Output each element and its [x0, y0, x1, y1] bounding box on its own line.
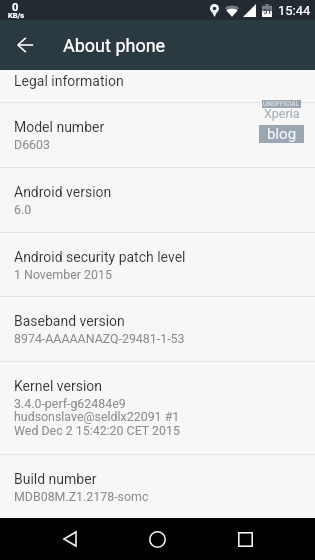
- staticText: Android security patch level: [14, 249, 186, 265]
- staticText: Model number: [14, 119, 105, 135]
- staticText: UNOFFICIAL: [263, 100, 300, 108]
- staticText: Build number: [14, 471, 97, 487]
- staticText: blog: [267, 125, 297, 143]
- staticText: 0: [12, 1, 19, 14]
- staticText: 8974-AAAAANAZQ-29481-1-53: [14, 331, 185, 346]
- staticText: About phone: [63, 35, 166, 56]
- button[interactable]: Back: [0, 20, 49, 70]
- staticText: 6.0: [14, 202, 32, 217]
- button[interactable]: Recent apps: [219, 518, 271, 560]
- staticText: 15:44: [278, 3, 311, 18]
- staticText: 51: [263, 7, 272, 16]
- button[interactable]: Android version: [0, 168, 315, 232]
- staticText: MDB08M.Z1.2178-somc: [14, 489, 149, 504]
- staticText: KB/s: [8, 11, 25, 20]
- staticText: 3.4.0-perf-g62484e9 hudsonslave@seldlx22…: [14, 396, 180, 438]
- button[interactable]: Model number: [0, 103, 315, 167]
- staticText: D6603: [14, 137, 50, 152]
- button[interactable]: Build number: [0, 455, 315, 518]
- staticText: 1 November 2015: [14, 267, 112, 282]
- staticText: Baseband version: [14, 313, 125, 329]
- staticText: Android version: [14, 184, 112, 200]
- button[interactable]: Home: [131, 518, 184, 560]
- button[interactable]: Baseband version: [0, 297, 315, 361]
- button[interactable]: Back: [44, 518, 96, 560]
- staticText: Legal information: [14, 73, 124, 89]
- button[interactable]: Android security patch level: [0, 233, 315, 296]
- button[interactable]: Kernel version: [0, 362, 315, 454]
- button[interactable]: Legal information: [0, 70, 315, 102]
- staticText: Kernel version: [14, 378, 103, 394]
- staticText: Xperia: [264, 106, 300, 121]
